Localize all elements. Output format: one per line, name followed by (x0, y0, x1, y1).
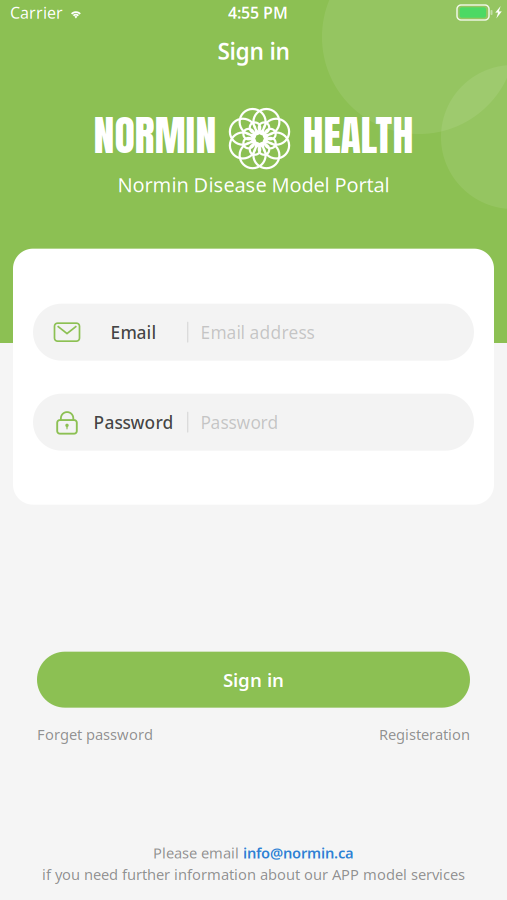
staticText: Please email (153, 843, 243, 862)
staticText: Normin Disease Model Portal (117, 171, 389, 198)
staticText: if you need further information about ou… (42, 864, 465, 884)
button[interactable]: Password (33, 394, 474, 451)
staticText: Registeration (379, 725, 470, 744)
staticText: Email (110, 321, 156, 344)
staticText: Password (93, 411, 173, 434)
staticText: Password (200, 411, 278, 434)
staticText: HEALTH (302, 103, 413, 167)
button[interactable]: Forget password (37, 725, 153, 744)
button[interactable]: Registeration (379, 725, 470, 744)
staticText: NORMIN (93, 103, 216, 167)
staticText: Sign in (217, 36, 289, 66)
button[interactable]: Sign in (37, 652, 470, 708)
button[interactable]: Email (33, 304, 474, 361)
staticText: 4:55 PM (228, 2, 288, 23)
staticText: Carrier (10, 2, 63, 23)
staticText: Sign in (223, 667, 284, 692)
staticText: Email address (200, 321, 314, 344)
staticText: Forget password (37, 725, 153, 744)
staticText: info@normin.ca (243, 843, 354, 862)
